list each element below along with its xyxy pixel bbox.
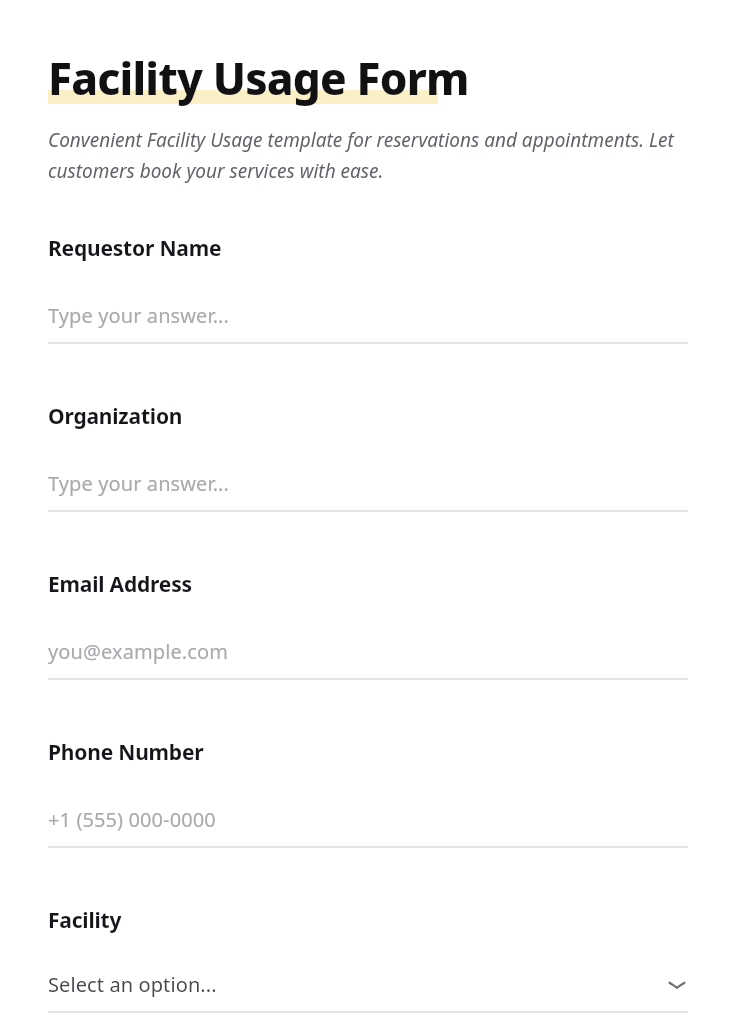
staticText: Facility	[48, 906, 122, 935]
staticText: Type your answer...	[48, 302, 230, 329]
staticText: Requestor Name	[48, 234, 222, 263]
button[interactable]: Facility, select an option	[48, 971, 688, 998]
button[interactable]: +1 (555) 000-0000	[48, 806, 688, 833]
staticText: Convenient Facility Usage template for r…	[48, 127, 688, 183]
staticText: Phone Number	[48, 738, 204, 767]
staticText: +1 (555) 000-0000	[48, 806, 216, 833]
staticText: Email Address	[48, 570, 192, 599]
button[interactable]: Type your answer...	[48, 470, 688, 497]
staticText: Organization	[48, 402, 183, 431]
staticText: you@example.com	[48, 638, 229, 665]
button[interactable]: Type your answer...	[48, 302, 688, 329]
staticText: Facility Usage Form	[48, 48, 469, 108]
staticText: Type your answer...	[48, 470, 230, 497]
staticText: Select an option...	[48, 971, 666, 998]
button[interactable]: you@example.com	[48, 638, 688, 665]
